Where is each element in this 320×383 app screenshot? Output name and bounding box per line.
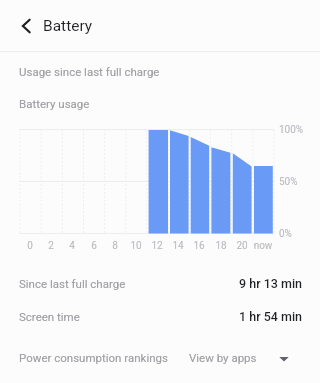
staticText: 12 xyxy=(144,240,170,252)
staticText: 6 xyxy=(81,240,107,252)
staticText: 4 xyxy=(59,240,85,252)
button[interactable]: Power consumption rankings xyxy=(0,335,320,379)
staticText: 0% xyxy=(279,228,292,240)
staticText: Screen time xyxy=(19,310,80,323)
staticText: 9 hr 13 min xyxy=(239,276,303,291)
staticText: 2 xyxy=(38,240,64,252)
staticText: Usage since last full charge xyxy=(19,65,160,78)
staticText: View by apps xyxy=(189,351,257,364)
staticText: 1 hr 54 min xyxy=(239,309,303,324)
staticText: Power consumption rankings xyxy=(19,351,168,364)
staticText: 20 xyxy=(229,240,255,252)
staticText: Battery xyxy=(43,17,93,35)
staticText: 0 xyxy=(17,240,43,252)
staticText: 100% xyxy=(279,124,304,136)
button[interactable]: Screen time xyxy=(0,299,320,333)
staticText: 18 xyxy=(208,240,234,252)
staticText: Since last full charge xyxy=(19,277,126,290)
staticText: 10 xyxy=(123,240,149,252)
staticText: Battery usage xyxy=(19,97,90,110)
staticText: 50% xyxy=(279,176,298,188)
staticText: 8 xyxy=(102,240,128,252)
staticText: now xyxy=(250,240,276,252)
button[interactable]: Back xyxy=(13,13,39,39)
staticText: 14 xyxy=(165,240,191,252)
staticText: 16 xyxy=(186,240,212,252)
button[interactable]: Since last full charge xyxy=(0,266,320,300)
